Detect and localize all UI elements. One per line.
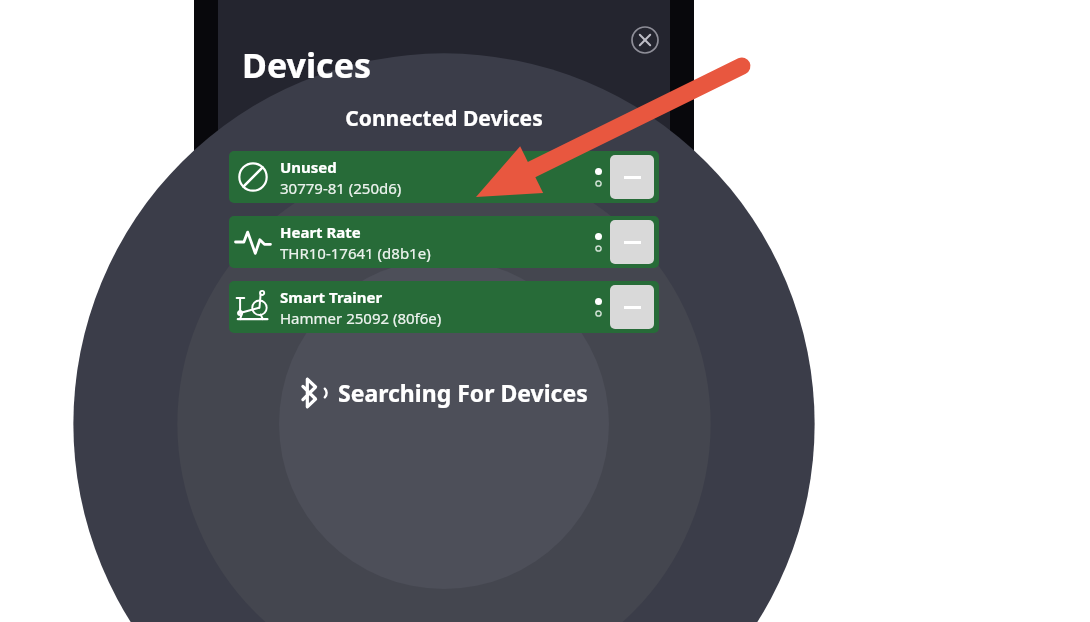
staticText: THR10-17641 (d8b1e) — [280, 243, 431, 263]
staticText: Searching For Devices — [338, 377, 588, 408]
staticText: Hammer 25092 (80f6e) — [280, 308, 442, 328]
button[interactable]: Remove Heart Rate — [610, 220, 654, 264]
button[interactable]: Close — [630, 25, 660, 55]
button[interactable]: Unused — [229, 151, 659, 203]
staticText: Connected Devices — [218, 104, 670, 133]
button[interactable]: Smart Trainer — [229, 281, 659, 333]
button[interactable]: Searching For Devices — [218, 377, 670, 408]
staticText: Heart Rate — [280, 222, 361, 242]
button[interactable]: Remove Unused — [610, 155, 654, 199]
button[interactable]: Remove Smart Trainer — [610, 285, 654, 329]
button[interactable]: Heart Rate — [229, 216, 659, 268]
staticText: Unused — [280, 157, 337, 177]
staticText: Smart Trainer — [280, 287, 383, 307]
staticText: 30779-81 (250d6) — [280, 178, 402, 198]
staticText: Devices — [242, 42, 371, 88]
